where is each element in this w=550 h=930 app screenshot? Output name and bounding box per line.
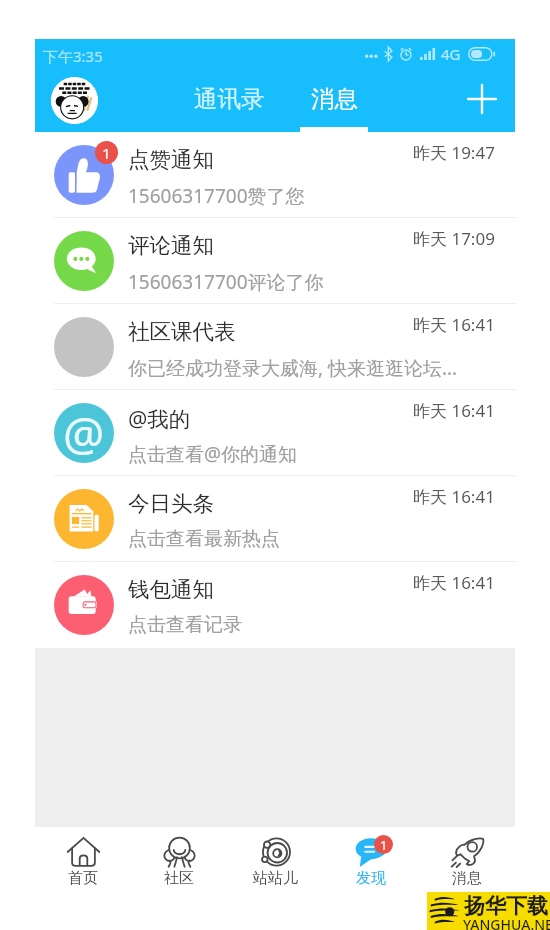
staticText: 发现 [356, 869, 386, 888]
staticText: 首页 [68, 869, 98, 888]
button[interactable]: 今日头条 [35, 476, 515, 562]
staticText: 通讯录 [194, 84, 265, 114]
button[interactable]: 评论通知 [35, 218, 515, 304]
staticText: 点击查看最新热点 [128, 527, 488, 551]
button[interactable]: 消息 [289, 68, 379, 132]
staticText: 社区课代表 [128, 318, 418, 345]
staticText: 扬华下载 [464, 893, 548, 919]
staticText: 评论通知 [128, 232, 418, 259]
button[interactable]: 社区 [131, 836, 227, 890]
staticText: 昨天 16:41 [413, 313, 495, 336]
staticText: 今日头条 [128, 490, 418, 517]
staticText: 点击查看记录 [128, 613, 488, 637]
staticText: 昨天 19:47 [413, 141, 495, 164]
button[interactable]: 钱包通知 [35, 562, 515, 648]
staticText: 15606317700评论了你 [128, 269, 488, 295]
button[interactable]: Add [450, 68, 514, 130]
staticText: @我的 [128, 404, 418, 433]
staticText: 15606317700赞了您 [128, 183, 488, 209]
button[interactable]: 社区课代表 [35, 304, 515, 390]
staticText: 1 [102, 143, 111, 163]
button[interactable]: 首页 [35, 836, 131, 890]
staticText: 钱包通知 [128, 576, 418, 603]
staticText: 点赞通知 [128, 146, 418, 173]
button[interactable]: 消息 [419, 836, 515, 890]
button[interactable]: 站站儿 [227, 836, 323, 890]
button[interactable]: @ [35, 390, 515, 476]
staticText: 站站儿 [253, 869, 298, 888]
staticText: 消息 [452, 869, 482, 888]
button[interactable]: 1 [35, 132, 515, 218]
staticText: 下午3:35 [43, 46, 103, 66]
staticText: 昨天 16:41 [413, 399, 495, 422]
staticText: 昨天 17:09 [413, 227, 495, 250]
button[interactable]: Profile [51, 77, 98, 124]
staticText: 昨天 16:41 [413, 485, 495, 508]
staticText: 点击查看@你的通知 [128, 441, 488, 467]
staticText: 4G [441, 44, 461, 64]
staticText: 昨天 16:41 [413, 571, 495, 594]
staticText: 你已经成功登录大威海, 快来逛逛论坛… [128, 355, 488, 381]
staticText: 消息 [311, 84, 358, 114]
staticText: YANGHUA.NET [463, 915, 550, 930]
button[interactable]: 通讯录 [184, 68, 274, 132]
staticText: 1 [380, 836, 388, 854]
button[interactable]: 1 [323, 836, 419, 890]
staticText: @ [63, 403, 105, 462]
staticText: 社区 [164, 869, 194, 888]
